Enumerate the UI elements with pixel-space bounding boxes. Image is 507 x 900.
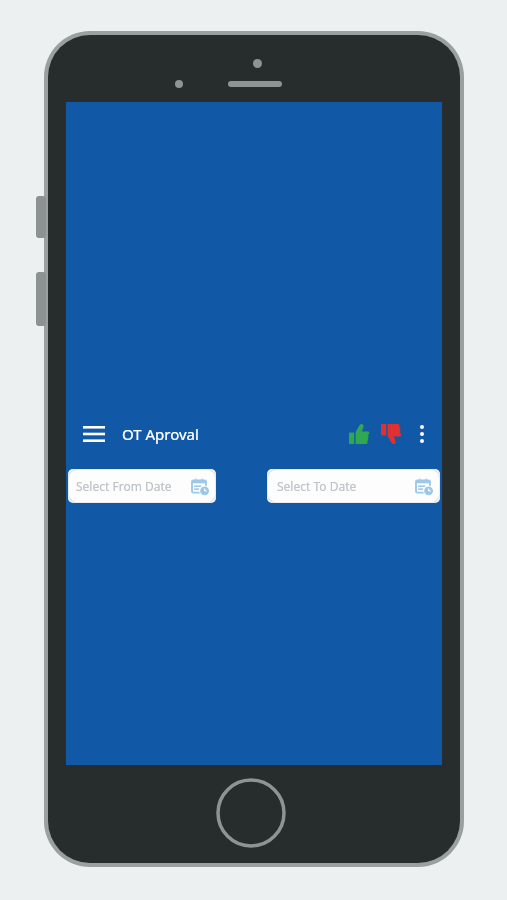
button[interactable]: Home (216, 778, 286, 848)
other: Volume down (36, 272, 46, 326)
staticText: OT Aproval (122, 424, 199, 444)
button[interactable]: More options (408, 414, 436, 454)
staticText: Select To Date (277, 478, 357, 494)
button[interactable]: Select From Date (68, 469, 216, 503)
button[interactable]: Select To Date (267, 469, 440, 503)
button[interactable]: Reject (376, 414, 406, 454)
button[interactable]: Open navigation menu (76, 416, 112, 452)
button[interactable]: Approve (344, 414, 374, 454)
staticText: Select From Date (76, 478, 172, 494)
other: Volume up (36, 196, 46, 238)
